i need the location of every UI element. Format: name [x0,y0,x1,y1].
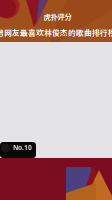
button[interactable]: No.10 [0,142,36,158]
staticText: No.10 [13,143,32,152]
staticText: 虎扑评分 [43,11,71,22]
staticText: 男网友最喜欢林俊杰的歌曲排行榜 [0,27,112,38]
